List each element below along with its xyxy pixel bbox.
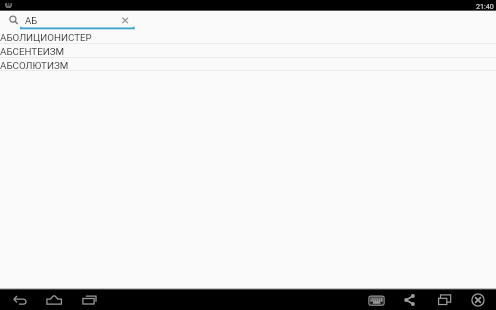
staticText: 21:40 (476, 2, 494, 10)
staticText: АБСОЛЮТИЗМ (0, 60, 69, 71)
staticText: АБСЕНТЕИЗМ (0, 46, 65, 57)
button[interactable]: АБСЕНТЕИЗМ (0, 44, 496, 57)
button[interactable]: Back (13, 294, 29, 306)
button[interactable]: Search (6, 13, 20, 27)
button[interactable]: Home (46, 295, 63, 307)
button[interactable]: АБСОЛЮТИЗМ (0, 58, 496, 70)
button[interactable]: АБОЛИЦИОНИСТЕР (0, 30, 496, 43)
button[interactable]: Share (402, 293, 418, 307)
button[interactable]: Clear text (119, 13, 132, 26)
button[interactable]: Multi window (438, 294, 454, 306)
button[interactable]: Keyboard (368, 294, 385, 307)
staticText: АБОЛИЦИОНИСТЕР (0, 32, 92, 43)
button[interactable]: Close (470, 292, 486, 308)
button[interactable]: Recent apps (82, 295, 99, 307)
staticText: АБ (25, 15, 38, 26)
